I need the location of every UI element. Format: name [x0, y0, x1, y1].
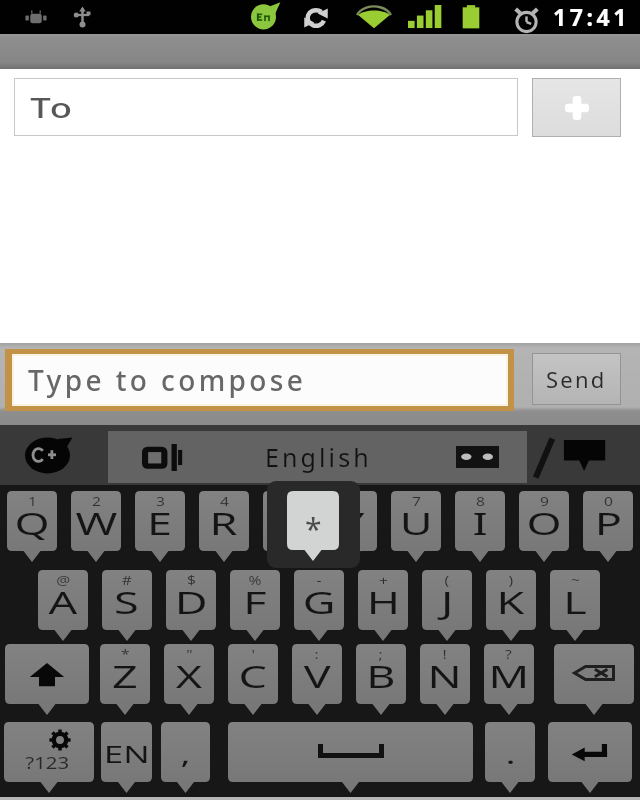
staticText: I [472, 502, 488, 544]
staticText: L [563, 581, 588, 623]
other: Shift [5, 644, 89, 715]
staticText: 9 [540, 493, 549, 509]
staticText: D [175, 581, 208, 623]
staticText: 5 [284, 493, 293, 509]
staticText: . [505, 736, 516, 771]
staticText: Q [14, 502, 51, 544]
staticText: E [147, 502, 173, 544]
staticText: ?123 [25, 751, 70, 774]
button[interactable]: : [292, 644, 342, 715]
button[interactable]: ! [420, 644, 470, 715]
staticText: 8 [476, 493, 485, 509]
staticText: K [496, 581, 525, 623]
button[interactable]: ~ [550, 570, 600, 641]
staticText: English [265, 440, 372, 474]
staticText: : [314, 646, 320, 662]
staticText: $ [187, 572, 196, 588]
button[interactable]: 0 [583, 491, 633, 562]
button[interactable]: 2 [71, 491, 121, 562]
staticText: To [30, 89, 75, 126]
staticText: @ [56, 572, 71, 588]
button[interactable]: Type to compose [14, 356, 506, 404]
staticText: 1 [28, 493, 37, 509]
button[interactable]: 1 [7, 491, 57, 562]
button[interactable]: T [287, 491, 339, 561]
button[interactable]: English [108, 431, 527, 483]
button[interactable]: To [14, 78, 518, 136]
button[interactable]: 5 [263, 491, 313, 562]
staticText: ! [442, 646, 448, 662]
button[interactable]: , [161, 722, 210, 793]
button[interactable]: Space [228, 722, 473, 793]
button[interactable]: % [230, 570, 280, 641]
button[interactable]: Symbols [4, 722, 94, 793]
other: Enter [548, 722, 632, 793]
button[interactable]: Backspace [554, 644, 634, 715]
button[interactable]: Send [532, 353, 621, 405]
staticText: - [316, 572, 322, 588]
staticText: N [428, 655, 462, 697]
staticText: W [75, 502, 118, 544]
staticText: S [114, 581, 140, 623]
staticText: C [238, 655, 267, 697]
button[interactable]: . [485, 722, 535, 793]
staticText: U [400, 502, 433, 544]
staticText: B [366, 655, 397, 697]
button[interactable]: Shift [5, 644, 89, 715]
button[interactable]: 4 [199, 491, 249, 562]
button[interactable]: $ [166, 570, 216, 641]
button[interactable]: ( [422, 570, 472, 641]
button[interactable]: ? [484, 644, 534, 715]
staticText: 7 [412, 493, 421, 509]
button[interactable]: 7 [391, 491, 441, 562]
staticText: " [186, 646, 193, 662]
button[interactable]: # [102, 570, 152, 641]
staticText: M [488, 655, 531, 697]
button[interactable]: 6 [327, 491, 377, 562]
button[interactable]: 3 [135, 491, 185, 562]
staticText: * [121, 646, 130, 662]
button[interactable]: - [294, 570, 344, 641]
staticText: Type to compose [28, 361, 307, 399]
staticText: % [248, 572, 261, 588]
staticText: ~ [571, 572, 580, 588]
staticText: 4 [220, 493, 229, 509]
button[interactable]: @ [38, 570, 88, 641]
staticText: ' [252, 646, 255, 662]
staticText: F [243, 581, 268, 623]
button[interactable]: ' [228, 644, 278, 715]
other: Symbols [4, 722, 94, 793]
staticText: H [367, 581, 400, 623]
staticText: 0 [604, 493, 613, 509]
button[interactable]: Voice input [25, 435, 75, 475]
staticText: Send [546, 364, 607, 394]
staticText: ) [508, 572, 514, 588]
staticText: V [304, 655, 331, 697]
button[interactable]: ) [486, 570, 536, 641]
staticText: J [441, 581, 454, 623]
button[interactable]: Enter [548, 722, 632, 793]
staticText: 2 [92, 493, 101, 509]
button[interactable]: Add recipient [532, 78, 621, 137]
other: Backspace [554, 644, 634, 715]
staticText: Z [112, 655, 138, 697]
other: Space [228, 722, 473, 793]
staticText: ? [505, 646, 513, 662]
staticText: A [48, 581, 77, 623]
staticText: EN [104, 737, 150, 770]
staticText: T [275, 502, 301, 544]
staticText: Y [339, 502, 365, 544]
button[interactable]: + [358, 570, 408, 641]
button[interactable]: 8 [455, 491, 505, 562]
button[interactable]: Hide keyboard [562, 440, 610, 471]
button[interactable]: 9 [519, 491, 569, 562]
staticText: ; [378, 646, 384, 662]
staticText: * [305, 508, 322, 549]
button[interactable]: ; [356, 644, 406, 715]
button[interactable]: " [164, 644, 214, 715]
button[interactable]: * [100, 644, 150, 715]
staticText: X [176, 655, 203, 697]
staticText: R [209, 502, 238, 544]
button[interactable]: EN [101, 722, 152, 793]
